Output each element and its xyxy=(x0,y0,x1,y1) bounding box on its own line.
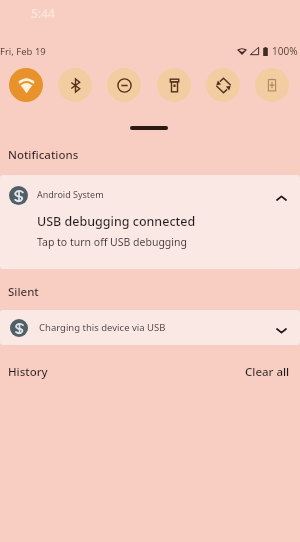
button[interactable]: Battery saver xyxy=(255,68,289,102)
button[interactable]: Charging this device via USB xyxy=(0,310,300,345)
button[interactable]: Bluetooth xyxy=(58,68,92,102)
staticText: Tap to turn off USB debugging xyxy=(37,235,187,249)
button[interactable]: Clear all xyxy=(245,364,290,380)
button[interactable]: Do not disturb xyxy=(107,68,141,102)
staticText: Notifications xyxy=(8,147,79,163)
button[interactable]: Flashlight xyxy=(157,68,191,102)
staticText: Android System xyxy=(37,188,104,200)
button[interactable]: Wi-Fi xyxy=(9,68,43,102)
button[interactable]: Android System xyxy=(0,175,300,269)
button[interactable]: History xyxy=(8,364,48,380)
button[interactable]: Auto rotate xyxy=(206,68,240,102)
staticText: Silent xyxy=(8,284,39,300)
button[interactable]: Expand xyxy=(130,126,168,130)
staticText: Fri, Feb 19 xyxy=(0,45,46,58)
staticText: 100% xyxy=(272,44,298,58)
staticText: USB debugging connected xyxy=(37,213,196,230)
staticText: Charging this device via USB xyxy=(39,321,166,334)
staticText: 5:44 xyxy=(31,5,55,21)
